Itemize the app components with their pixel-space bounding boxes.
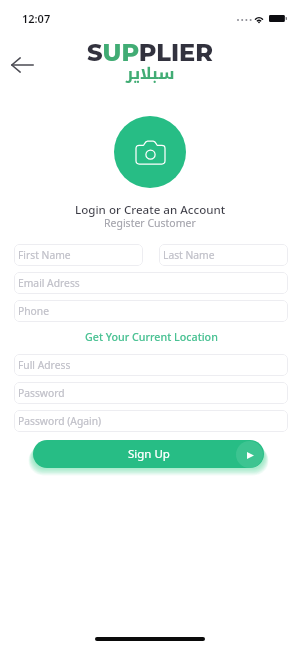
staticText: First Name xyxy=(18,248,71,262)
staticText: Last Name xyxy=(163,248,215,262)
staticText: SUPPLIER xyxy=(87,38,213,67)
button[interactable]: Sign Up xyxy=(33,440,264,468)
staticText: Email Adress xyxy=(18,276,80,290)
button[interactable]: Back xyxy=(6,50,40,80)
button[interactable]: Password xyxy=(14,382,288,404)
staticText: Sign Up xyxy=(128,446,170,462)
staticText: Password xyxy=(18,386,65,400)
button[interactable]: Email Adress xyxy=(14,272,288,294)
staticText: Full Adress xyxy=(18,358,71,372)
button[interactable]: Full Adress xyxy=(14,354,288,376)
staticText: Register Customer xyxy=(104,216,196,230)
staticText: سبلاير xyxy=(126,58,175,88)
staticText: 12:07 xyxy=(22,11,51,26)
button[interactable]: Get Your Current Location xyxy=(85,330,218,345)
staticText: Password (Again) xyxy=(18,414,102,428)
button[interactable]: Add photo xyxy=(114,116,186,188)
staticText: Login or Create an Account xyxy=(75,202,226,218)
button[interactable]: First Name xyxy=(14,244,143,266)
button[interactable]: Last Name xyxy=(159,244,288,266)
staticText: Phone xyxy=(18,304,49,318)
button[interactable]: Password (Again) xyxy=(14,410,288,432)
button[interactable]: Phone xyxy=(14,300,288,322)
